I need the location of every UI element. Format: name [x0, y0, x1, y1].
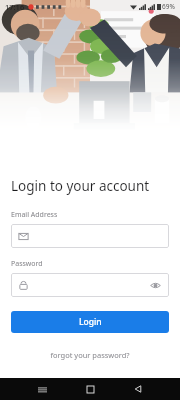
staticText: Password — [11, 259, 43, 269]
button[interactable]: Recents — [32, 379, 52, 399]
staticText: Login to your account — [11, 177, 150, 195]
button[interactable]: forgot your password? — [44, 348, 136, 362]
button[interactable]: Home — [80, 379, 100, 399]
staticText: Email Address — [11, 210, 58, 220]
button[interactable]: Show password — [149, 279, 162, 292]
button[interactable]: Password input — [11, 273, 169, 297]
staticText: Login — [79, 316, 102, 328]
staticText: 17:16 — [5, 2, 25, 12]
button[interactable]: Back — [128, 379, 148, 399]
staticText: forgot your password? — [50, 350, 130, 360]
button[interactable]: Email Address input — [11, 224, 169, 248]
button[interactable]: Login — [11, 311, 169, 333]
staticText: 69% — [162, 2, 175, 11]
